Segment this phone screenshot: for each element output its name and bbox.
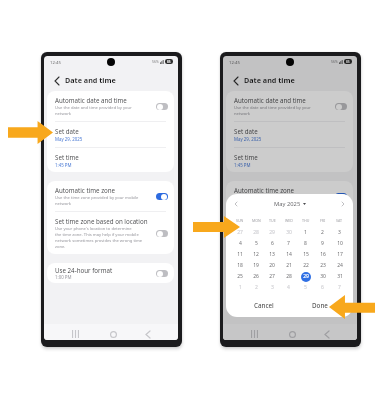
- button[interactable]: 11: [232, 249, 248, 260]
- button[interactable]: Automatic date and time: [47, 91, 174, 121]
- button[interactable]: Home: [106, 327, 120, 340]
- button[interactable]: Back: [50, 74, 63, 87]
- button[interactable]: 27: [264, 271, 280, 282]
- button[interactable]: Previous month: [231, 199, 241, 209]
- button[interactable]: Toggle off: [335, 103, 347, 110]
- staticText: Set time zone based on location: [55, 217, 148, 225]
- button[interactable]: Back: [229, 74, 242, 87]
- staticText: 11: [237, 251, 243, 258]
- staticText: Set date: [234, 127, 258, 135]
- button[interactable]: 21: [280, 260, 297, 271]
- button[interactable]: 31: [331, 271, 348, 282]
- staticText: 2: [255, 284, 258, 291]
- button[interactable]: 5: [297, 282, 314, 293]
- button[interactable]: 17: [331, 249, 348, 260]
- button[interactable]: Set time zone based on location: [226, 211, 353, 254]
- button[interactable]: Automatic date and time: [226, 91, 353, 121]
- button[interactable]: Back: [320, 327, 334, 340]
- button[interactable]: 18: [232, 260, 248, 271]
- button[interactable]: Recent apps: [247, 327, 261, 340]
- staticText: Use the date and time provided by your: [55, 105, 132, 111]
- button[interactable]: 9: [314, 238, 331, 249]
- button[interactable]: 30: [314, 271, 331, 282]
- button[interactable]: Toggle off: [335, 230, 347, 237]
- button[interactable]: 19: [248, 260, 264, 271]
- staticText: 1:00 PM: [55, 274, 72, 280]
- button[interactable]: 2: [248, 282, 264, 293]
- button[interactable]: Set time: [47, 147, 174, 172]
- button[interactable]: 1: [232, 282, 248, 293]
- button[interactable]: Automatic time zone: [47, 181, 174, 211]
- staticText: network: [55, 201, 72, 207]
- button[interactable]: Use 24-hour format: [47, 263, 174, 283]
- button[interactable]: 14: [280, 249, 297, 260]
- button[interactable]: 29: [297, 271, 314, 282]
- button[interactable]: Toggle on: [156, 193, 168, 200]
- staticText: Date and time: [65, 75, 116, 85]
- button[interactable]: Toggle off: [335, 270, 347, 277]
- button[interactable]: Toggle off: [156, 103, 168, 110]
- staticText: 31: [337, 273, 343, 280]
- button[interactable]: 2: [314, 227, 331, 238]
- button[interactable]: Toggle off: [156, 230, 168, 237]
- button[interactable]: Toggle on: [335, 193, 347, 200]
- button[interactable]: 10: [331, 238, 348, 249]
- button[interactable]: Set date: [226, 121, 353, 147]
- staticText: 22: [303, 262, 309, 269]
- button[interactable]: 28: [248, 227, 264, 238]
- button[interactable]: Done: [292, 293, 348, 317]
- staticText: WED: [285, 218, 293, 223]
- button[interactable]: Set time zone based on location: [47, 211, 174, 254]
- button[interactable]: 6: [314, 282, 331, 293]
- staticText: Done: [312, 301, 328, 310]
- button[interactable]: Automatic time zone: [226, 181, 353, 211]
- button[interactable]: Cancel: [236, 293, 292, 317]
- button[interactable]: Next month: [338, 199, 348, 209]
- staticText: 27: [237, 229, 243, 236]
- button[interactable]: 30: [280, 227, 297, 238]
- button[interactable]: 16: [314, 249, 331, 260]
- button[interactable]: Recent apps: [68, 327, 82, 340]
- button[interactable]: 3: [264, 282, 280, 293]
- button[interactable]: 1: [297, 227, 314, 238]
- button[interactable]: 26: [248, 271, 264, 282]
- button[interactable]: 24: [331, 260, 348, 271]
- staticText: May 29, 2025: [234, 136, 262, 142]
- button[interactable]: 25: [232, 271, 248, 282]
- button[interactable]: Toggle off: [156, 270, 168, 277]
- staticText: Use the time zone provided by your mobil…: [55, 195, 139, 201]
- staticText: 27: [269, 273, 275, 280]
- staticText: 15: [303, 251, 309, 258]
- staticText: 3: [271, 284, 274, 291]
- staticText: 3: [338, 229, 341, 236]
- button[interactable]: Set time: [226, 147, 353, 172]
- staticText: 4: [239, 240, 242, 247]
- button[interactable]: Home: [285, 327, 299, 340]
- button[interactable]: 8: [297, 238, 314, 249]
- button[interactable]: 27: [232, 227, 248, 238]
- button[interactable]: 20: [264, 260, 280, 271]
- staticText: Set date: [55, 127, 79, 135]
- button[interactable]: 7: [280, 238, 297, 249]
- button[interactable]: 15: [297, 249, 314, 260]
- button[interactable]: Use 24-hour format: [226, 263, 353, 283]
- button[interactable]: Set date: [47, 121, 174, 147]
- button[interactable]: 4: [280, 282, 297, 293]
- button[interactable]: 7: [331, 282, 348, 293]
- button[interactable]: Back: [141, 327, 155, 340]
- staticText: 24: [337, 262, 343, 269]
- staticText: SAT: [336, 218, 343, 223]
- button[interactable]: 4: [232, 238, 248, 249]
- button[interactable]: 3: [331, 227, 348, 238]
- button[interactable]: 29: [264, 227, 280, 238]
- staticText: 85: [167, 60, 171, 64]
- staticText: Use your phone's location to determine: [55, 226, 132, 232]
- button[interactable]: 6: [264, 238, 280, 249]
- button[interactable]: 28: [280, 271, 297, 282]
- button[interactable]: 22: [297, 260, 314, 271]
- button[interactable]: 12: [248, 249, 264, 260]
- button[interactable]: 5: [248, 238, 264, 249]
- button[interactable]: 13: [264, 249, 280, 260]
- button[interactable]: 23: [314, 260, 331, 271]
